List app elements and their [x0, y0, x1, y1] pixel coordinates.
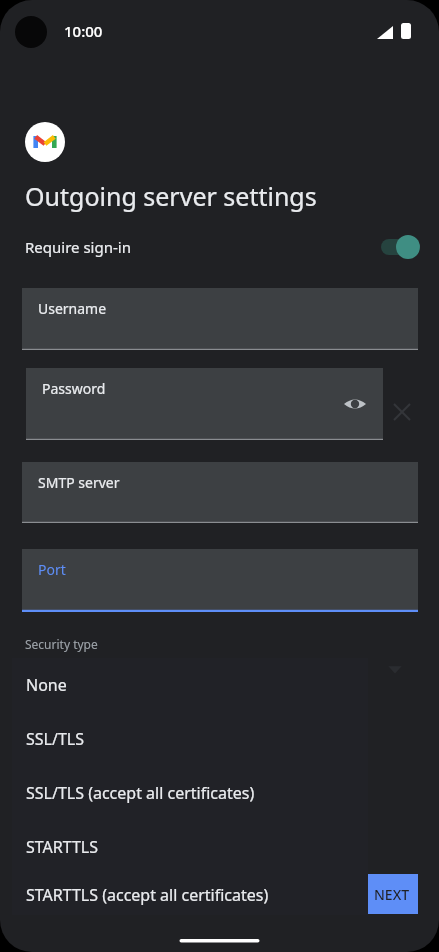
button[interactable]: None	[12, 658, 368, 712]
button[interactable]: Username	[22, 288, 418, 350]
staticText: Username	[38, 299, 107, 318]
staticText: NEXT	[374, 885, 410, 904]
button[interactable]: STARTTLS	[12, 820, 368, 874]
staticText: 10:00	[64, 21, 103, 41]
staticText: Outgoing server settings	[25, 179, 317, 213]
staticText: STARTTLS	[26, 836, 99, 858]
button[interactable]: NEXT	[366, 874, 418, 914]
staticText: Port	[38, 560, 66, 579]
staticText: SSL/TLS	[26, 728, 84, 750]
staticText: SMTP server	[38, 473, 120, 492]
staticText: STARTTLS (accept all certificates)	[26, 884, 269, 906]
staticText: Require sign-in	[25, 237, 381, 257]
button[interactable]: Clear	[390, 400, 414, 424]
staticText: None	[26, 674, 67, 696]
button[interactable]: SSL/TLS (accept all certificates)	[12, 766, 368, 820]
button[interactable]: SMTP server	[22, 462, 418, 523]
button[interactable]: Password	[26, 368, 383, 440]
button[interactable]: Gmail	[25, 122, 65, 162]
button[interactable]: SSL/TLS	[12, 712, 368, 766]
button[interactable]: Security type dropdown	[384, 658, 406, 680]
staticText: Password	[42, 379, 106, 398]
button[interactable]: Port	[22, 549, 418, 612]
button[interactable]: Require sign-in	[0, 227, 439, 267]
staticText: SSL/TLS (accept all certificates)	[26, 782, 255, 804]
staticText: Security type	[25, 636, 98, 652]
button[interactable]: STARTTLS (accept all certificates)	[12, 874, 368, 915]
button[interactable]: Show password	[343, 392, 367, 416]
